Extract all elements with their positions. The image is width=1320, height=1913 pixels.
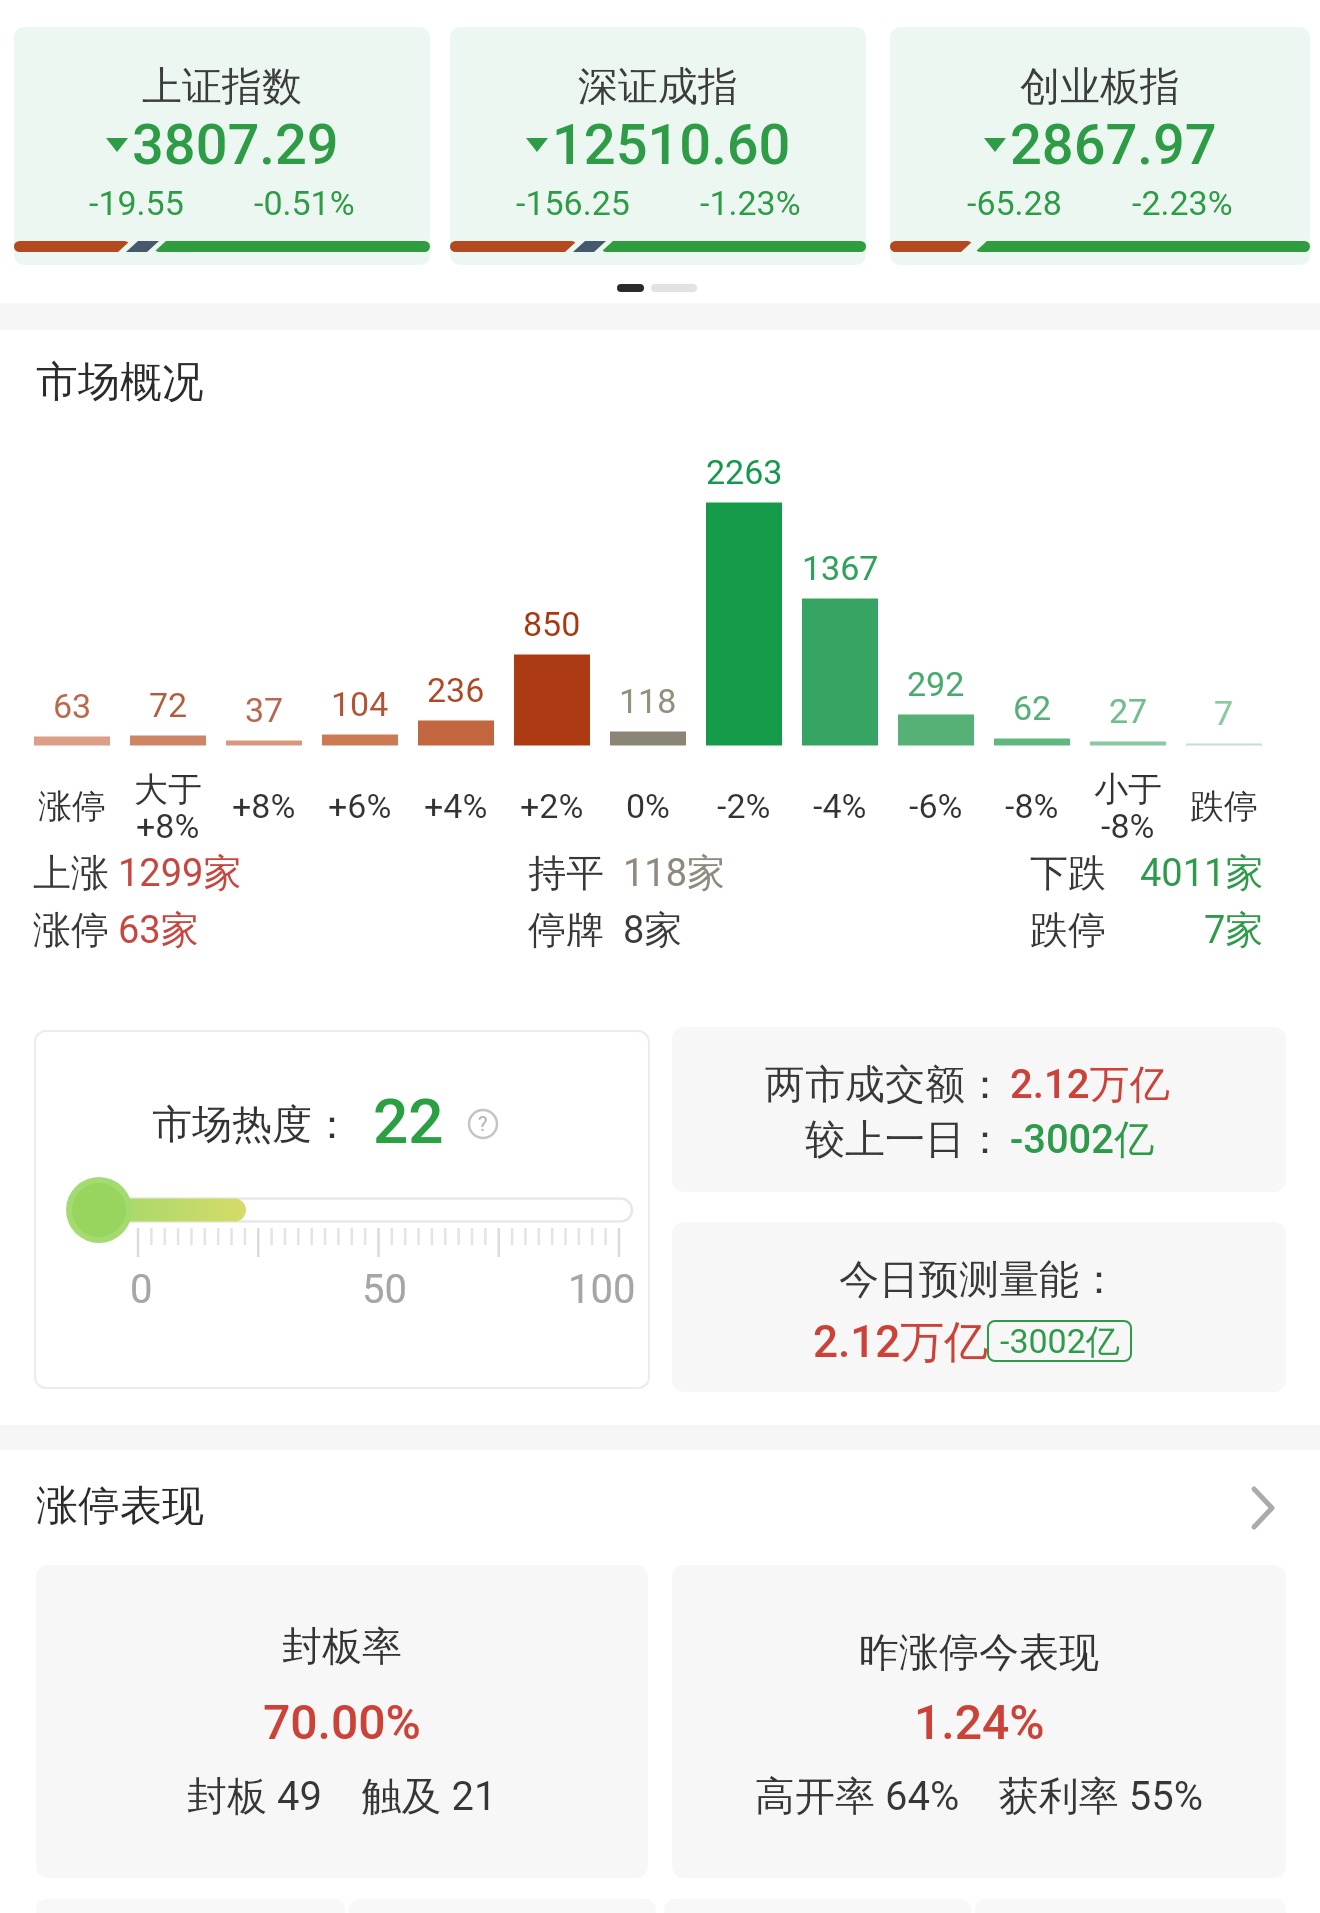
staticText: ?	[478, 1112, 488, 1135]
staticText: 3807.29	[132, 112, 339, 178]
staticText: 高开率 64% 获利率 55%	[755, 1771, 1204, 1821]
staticText: -0.51%	[254, 183, 355, 223]
staticText: 7	[1214, 693, 1234, 733]
button[interactable]	[672, 1222, 1286, 1392]
staticText: 2867.97	[1010, 112, 1217, 178]
staticText: 市场热度：	[152, 1099, 352, 1149]
staticText: 持平	[528, 849, 604, 897]
staticText: 两市成交额：	[765, 1059, 1005, 1109]
button[interactable]	[672, 1027, 1286, 1192]
staticText: -2%	[717, 786, 771, 826]
staticText: 1299家	[118, 849, 242, 897]
button[interactable]	[0, 1460, 1320, 1550]
staticText: -8%	[1101, 806, 1155, 846]
staticText: 小于	[1094, 768, 1162, 811]
staticText: -1.23%	[700, 183, 801, 223]
staticText: 上证指数	[142, 61, 302, 111]
staticText: +2%	[520, 786, 584, 826]
staticText: 236	[427, 670, 485, 710]
staticText: 72	[149, 685, 188, 725]
staticText: 118家	[623, 849, 726, 897]
staticText: -19.55	[89, 183, 184, 223]
staticText: 跌停	[1030, 906, 1106, 954]
staticText: 昨涨停今表现	[859, 1627, 1099, 1677]
staticText: 1367	[802, 548, 879, 588]
staticText: +8%	[232, 786, 296, 826]
staticText: 292	[907, 664, 965, 704]
staticText: 63	[53, 686, 92, 726]
staticText: 0	[130, 1266, 153, 1313]
staticText: -3002亿	[1010, 1114, 1155, 1164]
staticText: -4%	[813, 786, 867, 826]
staticText: 62	[1013, 688, 1052, 728]
staticText: 下跌	[1030, 849, 1106, 897]
button[interactable]	[36, 1565, 648, 1878]
staticText: 4011家	[1140, 849, 1264, 897]
staticText: 70.00%	[263, 1694, 421, 1750]
staticText: -6%	[909, 786, 963, 826]
staticText: 12510.60	[552, 112, 791, 178]
staticText: -65.28	[967, 183, 1062, 223]
staticText: 今日预测量能：	[839, 1254, 1119, 1304]
staticText: 创业板指	[1020, 61, 1180, 111]
button[interactable]: 深证成指	[450, 27, 866, 265]
staticText: 2263	[706, 452, 783, 492]
staticText: +4%	[424, 786, 488, 826]
staticText: 涨停表现	[36, 1480, 204, 1533]
button[interactable]: 上证指数	[14, 27, 430, 265]
staticText: 市场概况	[36, 356, 204, 409]
staticText: 涨停	[33, 906, 109, 954]
staticText: 104	[331, 684, 389, 724]
staticText: 停牌	[528, 906, 604, 954]
staticText: 封板 49 触及 21	[187, 1771, 497, 1821]
staticText: 100	[568, 1266, 636, 1313]
staticText: 50	[362, 1266, 407, 1313]
staticText: -8%	[1005, 786, 1059, 826]
staticText: 63家	[118, 906, 199, 954]
staticText: 封板率	[282, 1621, 402, 1671]
staticText: 37	[245, 690, 284, 730]
staticText: -2.23%	[1132, 183, 1233, 223]
staticText: 22	[373, 1085, 444, 1158]
staticText: 大于	[134, 768, 202, 811]
button[interactable]	[672, 1565, 1286, 1878]
button[interactable]: 创业板指	[890, 27, 1310, 265]
staticText: -156.25	[516, 183, 630, 223]
staticText: 深证成指	[578, 61, 738, 111]
staticText: 27	[1109, 691, 1148, 731]
staticText: 涨停	[38, 785, 106, 828]
staticText: +8%	[136, 806, 200, 846]
staticText: 850	[523, 604, 581, 644]
staticText: 2.12万亿	[813, 1315, 989, 1370]
staticText: 8家	[623, 906, 683, 954]
staticText: +6%	[328, 786, 392, 826]
staticText: 1.24%	[914, 1694, 1045, 1750]
staticText: 2.12万亿	[1010, 1059, 1170, 1109]
staticText: 7家	[1204, 906, 1264, 954]
staticText: 0%	[626, 786, 671, 826]
staticText: 跌停	[1190, 785, 1258, 828]
button[interactable]	[34, 1030, 650, 1389]
staticText: 上涨	[33, 849, 109, 897]
staticText: 118	[619, 681, 677, 721]
staticText: 较上一日：	[805, 1114, 1005, 1164]
staticText: -3002亿	[1000, 1320, 1120, 1363]
